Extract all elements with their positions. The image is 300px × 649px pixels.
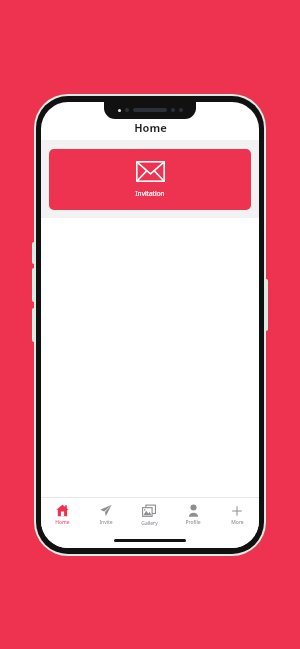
staticText: Invitation (135, 189, 165, 198)
button[interactable]: Profile (171, 498, 215, 532)
other: More (231, 505, 243, 517)
staticText: Home (55, 519, 70, 526)
button[interactable]: Invite (84, 498, 127, 532)
other: Home (56, 504, 69, 517)
staticText: Home (134, 120, 167, 135)
other: Invite (99, 504, 112, 517)
staticText: Gallery (141, 520, 158, 527)
other: Invitation (136, 161, 165, 182)
button[interactable]: More (215, 498, 259, 532)
staticText: Profile (185, 519, 201, 526)
button[interactable]: Gallery (127, 498, 171, 532)
other: Gallery (142, 504, 156, 518)
staticText: More (231, 519, 244, 526)
other: Profile (187, 504, 200, 517)
button[interactable]: Home (41, 498, 84, 532)
staticText: Invite (99, 519, 113, 526)
button[interactable]: Invitation (49, 149, 251, 210)
